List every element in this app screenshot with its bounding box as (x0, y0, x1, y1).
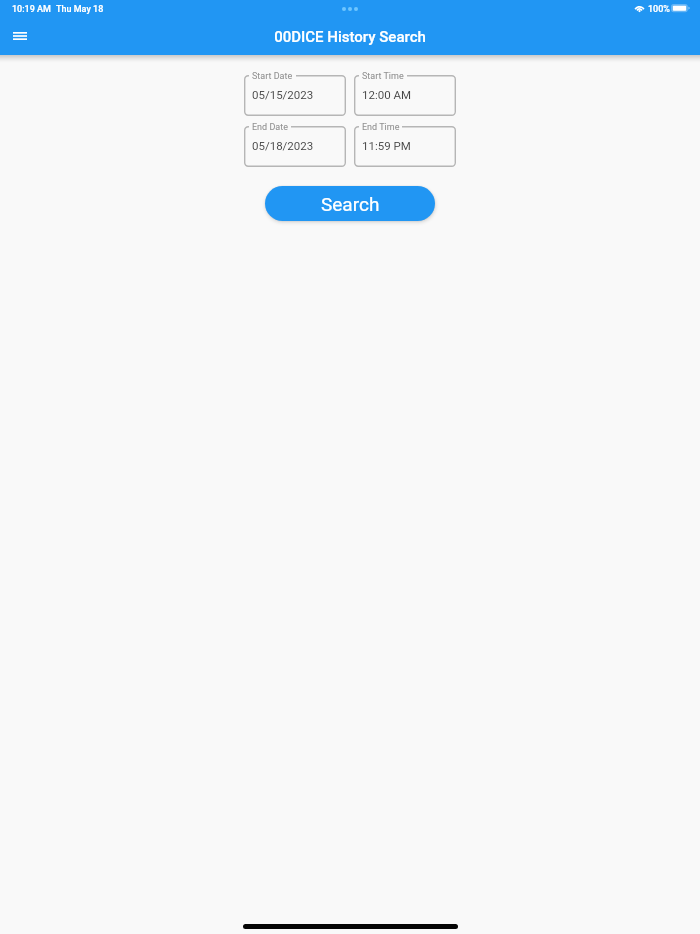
button[interactable]: Start Date (244, 75, 346, 116)
button[interactable]: End Time (354, 126, 456, 167)
staticText: 10:19 AM (12, 4, 51, 15)
button[interactable]: Start Time (354, 75, 456, 116)
staticText: Start Time (362, 71, 404, 82)
staticText: 05/18/2023 (252, 139, 314, 152)
staticText: 11:59 PM (362, 139, 411, 152)
button[interactable]: Open navigation menu (5, 23, 35, 53)
staticText: End Date (252, 122, 288, 133)
staticText: 00DICE History Search (274, 28, 426, 46)
staticText: Start Date (252, 71, 293, 82)
staticText: End Time (362, 122, 400, 133)
staticText: Thu May 18 (56, 4, 104, 15)
staticText: 100% (648, 4, 670, 15)
button[interactable]: End Date (244, 126, 346, 167)
staticText: 12:00 AM (362, 88, 412, 101)
button[interactable]: Search (265, 186, 435, 221)
staticText: Search (321, 193, 380, 215)
staticText: 05/15/2023 (252, 88, 314, 101)
